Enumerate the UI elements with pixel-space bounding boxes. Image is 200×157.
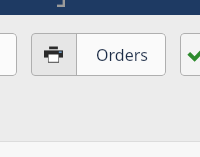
button[interactable]: Print <box>31 33 76 76</box>
button[interactable]: Previous <box>0 33 17 76</box>
button[interactable]: Orders <box>77 33 166 76</box>
button[interactable]: Approve <box>180 33 200 76</box>
staticText: Orders <box>96 44 148 66</box>
